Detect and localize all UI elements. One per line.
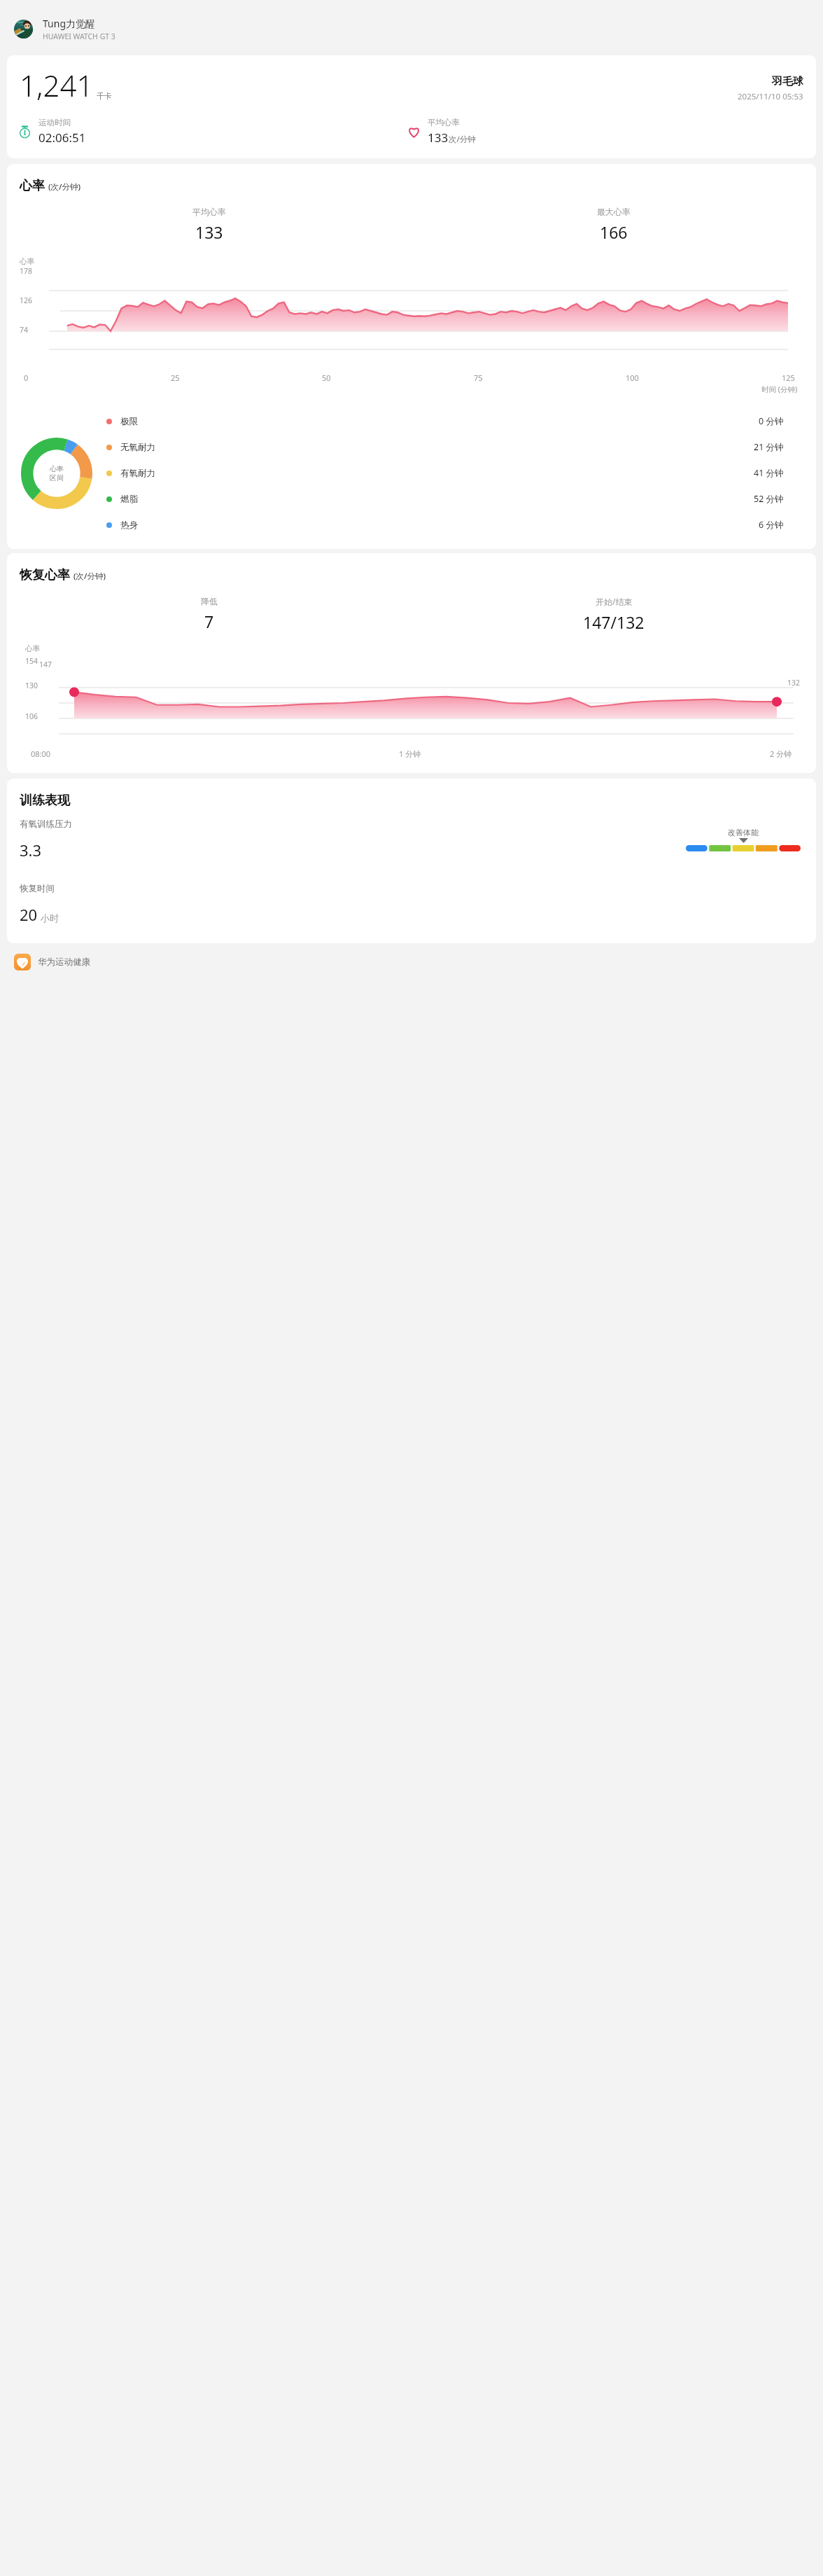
staticText: 热身 <box>120 520 138 531</box>
staticText: 区间 <box>50 473 64 482</box>
staticText: 小时 <box>41 912 59 924</box>
button[interactable]: 无氧耐力 <box>106 434 802 460</box>
staticText: 130 <box>25 681 38 690</box>
staticText: 燃脂 <box>120 494 138 505</box>
button[interactable]: 燃脂 <box>106 486 802 512</box>
staticText: 最大心率 <box>597 207 631 217</box>
staticText: 147 <box>39 660 52 669</box>
staticText: 1,241 <box>20 65 94 105</box>
staticText: 心率 <box>25 644 40 653</box>
button[interactable]: 心率 <box>7 164 816 549</box>
staticText: 74 <box>20 325 29 335</box>
staticText: 降低 <box>201 596 218 606</box>
staticText: 126 <box>20 295 33 305</box>
staticText: 训练表现 <box>20 793 70 809</box>
staticText: 178 <box>20 266 33 276</box>
staticText: 106 <box>25 711 38 721</box>
staticText: 2 分钟 <box>770 749 792 759</box>
staticText: 千卡 <box>97 91 112 101</box>
staticText: (次/分钟) <box>48 181 81 193</box>
staticText: 华为运动健康 <box>38 956 90 968</box>
button[interactable]: 热身 <box>106 512 802 538</box>
staticText: 52 分钟 <box>754 493 784 505</box>
staticText: 75 <box>474 373 483 383</box>
staticText: 154 <box>25 656 38 666</box>
other: Average heart rate <box>407 125 421 139</box>
staticText: 开始/结束 <box>596 596 633 607</box>
staticText: 3.3 <box>20 840 42 861</box>
staticText: 25 <box>171 373 180 383</box>
button[interactable]: 训练表现 <box>7 779 816 943</box>
staticText: 次/分钟 <box>449 134 476 145</box>
staticText: 无氧耐力 <box>120 442 155 453</box>
staticText: 平均心率 <box>428 118 460 127</box>
staticText: 100 <box>626 373 639 383</box>
staticText: 运动时间 <box>38 118 71 127</box>
staticText: 心率 <box>50 464 64 473</box>
other: 华为运动健康 <box>14 954 31 970</box>
staticText: 08:00 <box>31 749 51 759</box>
staticText: 恢复时间 <box>20 883 55 894</box>
staticText: 6 分钟 <box>759 519 784 531</box>
staticText: 166 <box>600 221 628 243</box>
staticText: 羽毛球 <box>772 75 803 88</box>
staticText: 改善体能 <box>728 828 759 837</box>
staticText: 1 分钟 <box>399 749 421 759</box>
staticText: 极限 <box>120 416 138 427</box>
staticText: 41 分钟 <box>754 467 784 479</box>
staticText: 133 <box>428 130 449 146</box>
staticText: 7 <box>204 611 214 632</box>
staticText: 平均心率 <box>192 207 226 217</box>
button[interactable]: 极限 <box>106 408 802 434</box>
staticText: 有氧训练压力 <box>20 819 72 830</box>
staticText: 125 <box>782 373 795 383</box>
staticText: 02:06:51 <box>38 130 86 146</box>
staticText: 147/132 <box>583 611 645 633</box>
other: Duration <box>18 125 31 139</box>
button[interactable]: 有氧耐力 <box>106 460 802 486</box>
staticText: 有氧耐力 <box>120 468 155 479</box>
staticText: 133 <box>195 221 223 243</box>
staticText: 心率 <box>20 257 34 266</box>
staticText: 心率 <box>20 178 45 194</box>
staticText: 21 分钟 <box>754 441 784 453</box>
staticText: 132 <box>787 678 801 688</box>
staticText: (次/分钟) <box>73 571 106 582</box>
staticText: 20 <box>20 904 38 925</box>
staticText: HUAWEI WATCH GT 3 <box>43 32 115 41</box>
button[interactable]: 恢复心率 <box>7 553 816 773</box>
staticText: 50 <box>322 373 331 383</box>
staticText: 0 分钟 <box>759 415 784 427</box>
button[interactable]: 华为运动健康 <box>14 954 823 970</box>
staticText: 恢复心率 <box>20 567 70 583</box>
staticText: Tung力觉醒 <box>43 17 95 30</box>
staticText: 0 <box>24 373 29 383</box>
button[interactable]: 1,241 <box>7 55 816 158</box>
staticText: 2025/11/10 05:53 <box>738 91 803 102</box>
staticText: 时间 (分钟) <box>761 384 798 394</box>
